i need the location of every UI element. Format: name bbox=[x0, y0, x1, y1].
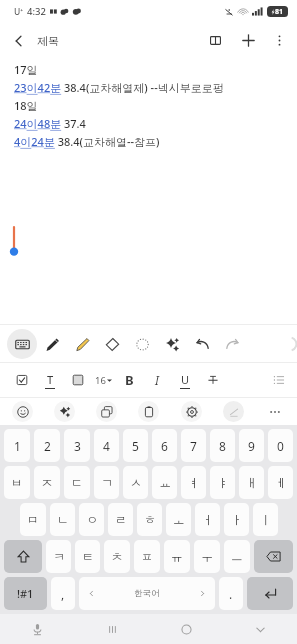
staticText: 2 bbox=[44, 438, 51, 454]
button[interactable]: T bbox=[36, 366, 64, 394]
button[interactable]: 5 bbox=[123, 429, 148, 462]
staticText: ㅑ bbox=[217, 475, 229, 490]
button[interactable]: Shift bbox=[4, 540, 42, 573]
button[interactable]: ㅊ bbox=[104, 540, 130, 573]
staticText: ㅗ bbox=[173, 512, 185, 527]
button[interactable]: B bbox=[115, 366, 143, 394]
button[interactable]: ㅈ bbox=[34, 466, 60, 499]
button[interactable]: ㅂ bbox=[4, 466, 30, 499]
button[interactable]: Enter bbox=[247, 577, 293, 610]
button[interactable]: ㄱ bbox=[94, 466, 119, 499]
button[interactable]: ㄷ bbox=[64, 466, 90, 499]
staticText: 한국어 bbox=[134, 588, 160, 599]
button[interactable]: 6 bbox=[152, 429, 177, 462]
button[interactable]: 1 bbox=[4, 429, 30, 462]
button[interactable]: AI bbox=[157, 329, 187, 359]
button[interactable]: . bbox=[219, 577, 243, 610]
staticText: ㅕ bbox=[188, 475, 200, 490]
staticText: ㅠ bbox=[171, 549, 183, 564]
button[interactable]: ㅠ bbox=[164, 540, 190, 573]
button[interactable]: ㅁ bbox=[20, 503, 46, 536]
button[interactable]: ㅍ bbox=[134, 540, 160, 573]
button[interactable]: List bbox=[269, 370, 289, 390]
button[interactable]: !#1 bbox=[4, 577, 47, 610]
button[interactable]: Emoji bbox=[12, 401, 33, 422]
button[interactable]: Undo bbox=[187, 329, 217, 359]
button[interactable]: Recents bbox=[75, 614, 149, 644]
button[interactable]: ㅡ bbox=[224, 540, 250, 573]
staticText: U⁺ bbox=[14, 6, 24, 18]
button[interactable]: Highlight bbox=[64, 366, 92, 394]
staticText: !#1 bbox=[17, 586, 34, 601]
button[interactable]: Checklist bbox=[8, 366, 36, 394]
staticText: ㅡ bbox=[231, 549, 243, 564]
button[interactable]: ㅛ bbox=[152, 466, 177, 499]
staticText: ㅁ bbox=[27, 512, 39, 527]
button[interactable]: Hide keyboard bbox=[223, 614, 297, 644]
button[interactable]: Home bbox=[149, 614, 223, 644]
button[interactable]: View mode bbox=[199, 24, 232, 57]
button[interactable]: Strikethrough bbox=[199, 366, 227, 394]
button[interactable]: ㅌ bbox=[75, 540, 100, 573]
button[interactable]: ㅔ bbox=[268, 466, 293, 499]
staticText: 17일 bbox=[14, 62, 38, 77]
button[interactable]: ㅕ bbox=[181, 466, 206, 499]
button[interactable]: U bbox=[171, 366, 199, 394]
button[interactable]: Redo bbox=[217, 329, 247, 359]
button[interactable]: ㅐ bbox=[239, 466, 264, 499]
button[interactable]: Keyboard bbox=[7, 329, 37, 359]
staticText: ㅏ bbox=[231, 512, 243, 527]
staticText: 6 bbox=[161, 438, 168, 454]
button[interactable]: Eraser bbox=[97, 329, 127, 359]
button[interactable]: Highlighter bbox=[67, 329, 97, 359]
button[interactable]: 2 bbox=[34, 429, 60, 462]
button[interactable]: ㅋ bbox=[46, 540, 71, 573]
button[interactable]: 9 bbox=[239, 429, 264, 462]
button[interactable]: Select bbox=[127, 329, 157, 359]
button[interactable]: More bbox=[265, 402, 285, 422]
staticText: 7 bbox=[190, 438, 197, 454]
button[interactable]: Clipboard bbox=[138, 401, 159, 422]
button[interactable]: ㅏ bbox=[224, 503, 249, 536]
button[interactable]: I bbox=[143, 366, 171, 394]
button[interactable]: 16 bbox=[92, 366, 115, 394]
button[interactable]: 8 bbox=[210, 429, 235, 462]
button[interactable]: More options bbox=[265, 26, 294, 55]
staticText: ㅜ bbox=[201, 549, 213, 564]
button[interactable]: ㅣ bbox=[253, 503, 278, 536]
staticText: ㅛ bbox=[159, 475, 171, 490]
button[interactable]: ㅎ bbox=[137, 503, 162, 536]
staticText: 5 bbox=[132, 438, 139, 454]
button[interactable]: 7 bbox=[181, 429, 206, 462]
button[interactable]: ㅇ bbox=[79, 503, 104, 536]
button[interactable]: 0 bbox=[268, 429, 293, 462]
button[interactable]: 4 bbox=[94, 429, 119, 462]
staticText: ㅈ bbox=[41, 475, 53, 490]
button[interactable]: Settings bbox=[181, 401, 202, 422]
button[interactable]: ㄴ bbox=[50, 503, 75, 536]
button[interactable]: Voice input bbox=[0, 614, 75, 644]
button[interactable]: 3 bbox=[64, 429, 90, 462]
button[interactable]: ㅑ bbox=[210, 466, 235, 499]
button[interactable]: ㅓ bbox=[195, 503, 220, 536]
staticText: 4 bbox=[103, 438, 110, 454]
button[interactable]: Add bbox=[232, 24, 265, 57]
button[interactable]: ㅅ bbox=[123, 466, 148, 499]
staticText: ㅔ bbox=[275, 475, 287, 490]
staticText: . bbox=[229, 586, 233, 602]
button[interactable]: , bbox=[51, 577, 75, 610]
button[interactable]: Back bbox=[0, 22, 37, 59]
button[interactable]: Backspace bbox=[254, 540, 293, 573]
button[interactable]: Space, Korean bbox=[79, 577, 215, 610]
button[interactable]: Translate bbox=[96, 401, 117, 422]
button[interactable]: AI assist bbox=[54, 401, 75, 422]
staticText: 9 bbox=[248, 438, 255, 454]
button[interactable]: ㅗ bbox=[166, 503, 191, 536]
staticText: ㅇ bbox=[86, 512, 98, 527]
staticText: 24이48분 37.4 bbox=[14, 116, 86, 131]
button[interactable]: ㅜ bbox=[194, 540, 220, 573]
button[interactable]: Pen bbox=[37, 329, 67, 359]
staticText: ㅣ bbox=[260, 512, 272, 527]
button[interactable]: ㄹ bbox=[108, 503, 133, 536]
button[interactable]: Handwriting bbox=[223, 401, 244, 422]
